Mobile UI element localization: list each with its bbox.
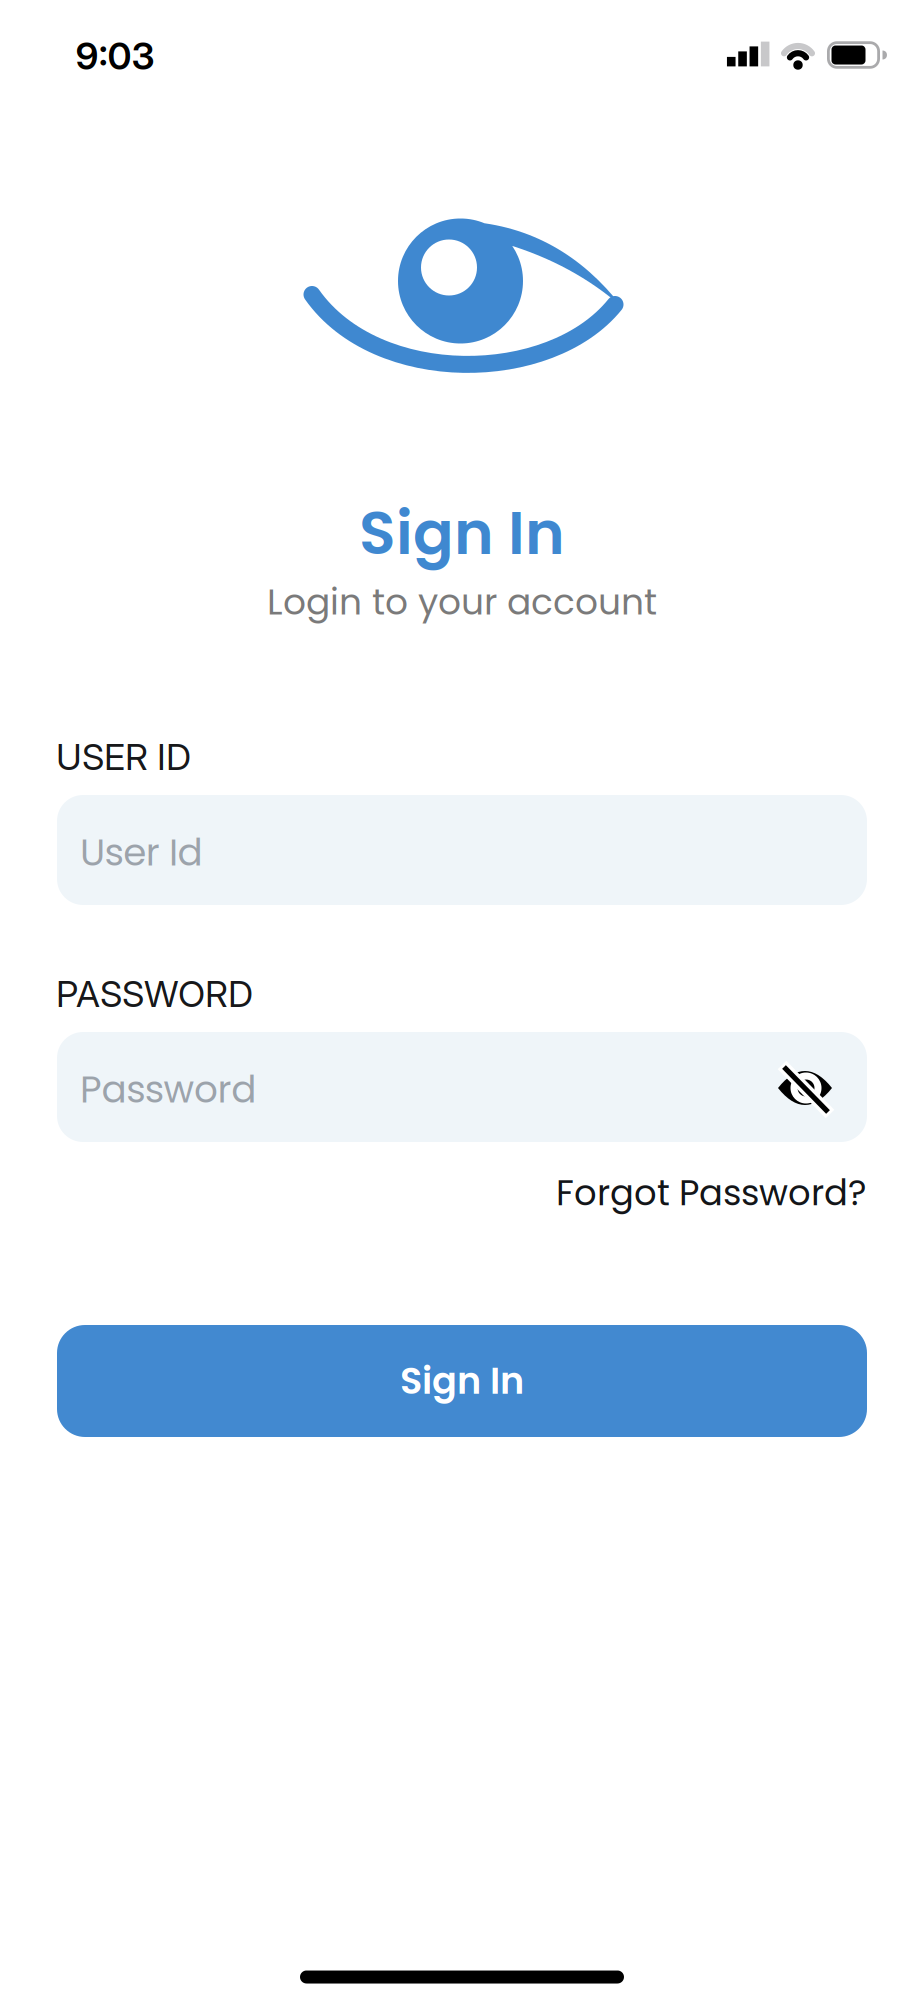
staticText: 9:03 <box>75 33 154 79</box>
staticText: USER ID <box>56 735 191 779</box>
button[interactable]: Sign In <box>57 1325 867 1437</box>
staticText: Login to your account <box>267 577 657 627</box>
button[interactable]: Forgot Password? <box>556 1168 867 1218</box>
staticText: PASSWORD <box>56 972 253 1016</box>
staticText: Sign In <box>400 1355 524 1407</box>
staticText: Sign In <box>359 491 565 575</box>
staticText: Forgot Password? <box>556 1168 867 1218</box>
staticText: User Id <box>80 826 203 879</box>
button[interactable]: Show password <box>774 1060 838 1116</box>
staticText: Password <box>80 1063 256 1116</box>
button[interactable]: Password <box>57 1032 867 1142</box>
button[interactable]: User Id <box>57 795 867 905</box>
